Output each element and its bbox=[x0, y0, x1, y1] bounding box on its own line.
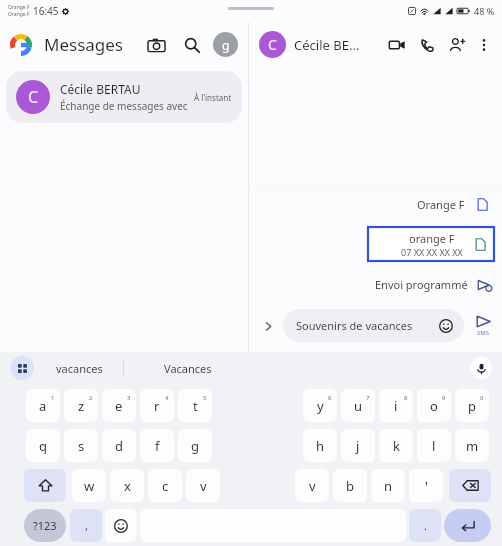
staticText: h bbox=[316, 437, 325, 455]
button[interactable]: y bbox=[303, 389, 337, 422]
button[interactable]: j bbox=[341, 429, 375, 462]
staticText: 4 bbox=[165, 394, 169, 402]
staticText: i bbox=[394, 397, 398, 415]
button[interactable]: e bbox=[102, 389, 136, 422]
button[interactable]: o bbox=[417, 389, 451, 422]
staticText: ?123 bbox=[33, 518, 57, 533]
staticText: z bbox=[78, 397, 85, 415]
staticText: Souvenirs de vacances bbox=[296, 318, 413, 333]
button[interactable]: C bbox=[6, 71, 242, 123]
staticText: Messages bbox=[44, 33, 124, 56]
button[interactable]: Envoi programmé bbox=[249, 274, 502, 295]
staticText: s bbox=[78, 437, 85, 455]
staticText: u bbox=[354, 397, 363, 415]
staticText: g bbox=[191, 437, 199, 455]
button[interactable]: p bbox=[455, 389, 489, 422]
button[interactable]: C bbox=[259, 31, 286, 58]
staticText: 9 bbox=[442, 394, 446, 402]
button[interactable]: s bbox=[64, 429, 98, 462]
staticText: 7 bbox=[366, 394, 370, 402]
button[interactable]: x bbox=[110, 469, 144, 502]
button[interactable]: Backspace bbox=[449, 469, 491, 502]
staticText: k bbox=[393, 437, 400, 455]
button[interactable]: d bbox=[102, 429, 136, 462]
staticText: e bbox=[115, 397, 123, 415]
button[interactable]: k bbox=[379, 429, 413, 462]
button[interactable]: Orange F bbox=[249, 193, 502, 216]
button[interactable]: Vacances bbox=[164, 361, 212, 376]
staticText: y bbox=[317, 397, 324, 415]
button[interactable]: Emoji bbox=[436, 316, 456, 336]
button[interactable]: q bbox=[26, 429, 60, 462]
button[interactable]: Video call bbox=[384, 32, 410, 58]
button[interactable]: m bbox=[455, 429, 489, 462]
staticText: x bbox=[124, 477, 131, 495]
button[interactable]: z bbox=[64, 389, 98, 422]
staticText: ' bbox=[425, 477, 428, 495]
staticText: 48 % bbox=[474, 5, 495, 17]
staticText: orange F bbox=[409, 231, 455, 246]
button[interactable]: b bbox=[333, 469, 367, 502]
staticText: 16:45 bbox=[33, 4, 59, 18]
staticText: 07 XX XX XX XX bbox=[401, 246, 463, 258]
staticText: 6 bbox=[328, 394, 332, 402]
button[interactable]: v bbox=[186, 469, 220, 502]
button[interactable]: Voice input bbox=[470, 357, 492, 379]
staticText: , bbox=[85, 518, 88, 533]
button[interactable]: u bbox=[341, 389, 375, 422]
button[interactable]: l bbox=[417, 429, 451, 462]
staticText: m bbox=[466, 437, 479, 455]
button[interactable]: f bbox=[140, 429, 174, 462]
button[interactable]: a bbox=[26, 389, 60, 422]
button[interactable]: Souvenirs de vacances bbox=[283, 309, 464, 342]
button[interactable]: i bbox=[379, 389, 413, 422]
staticText: Échange de messages avec … bbox=[60, 99, 194, 113]
staticText: d bbox=[115, 437, 123, 455]
staticText: q bbox=[39, 437, 47, 455]
button[interactable]: Call bbox=[414, 32, 440, 58]
button[interactable]: Send SMS bbox=[470, 314, 496, 337]
button[interactable]: Enter bbox=[444, 509, 491, 542]
button[interactable]: Camera bbox=[141, 30, 171, 60]
staticText: j bbox=[356, 437, 360, 455]
button[interactable]: v bbox=[295, 469, 329, 502]
button[interactable]: More options bbox=[472, 33, 496, 57]
staticText: . bbox=[424, 518, 427, 533]
staticText: Cécile BERTAU bbox=[60, 81, 141, 97]
button[interactable]: vacances bbox=[56, 361, 103, 376]
staticText: f bbox=[155, 437, 160, 455]
staticText: 2 bbox=[89, 394, 93, 402]
staticText: 8 bbox=[404, 394, 408, 402]
staticText: v bbox=[309, 477, 316, 495]
staticText: g bbox=[222, 37, 230, 53]
staticText: Envoi programmé bbox=[375, 277, 468, 292]
staticText: c bbox=[162, 477, 169, 495]
staticText: v bbox=[200, 477, 207, 495]
button[interactable]: c bbox=[148, 469, 182, 502]
button[interactable]: Toolbar bbox=[10, 356, 34, 380]
button[interactable]: orange F bbox=[367, 226, 495, 262]
button[interactable]: . bbox=[409, 509, 441, 542]
staticText: p bbox=[468, 397, 476, 415]
staticText: b bbox=[346, 477, 354, 495]
button[interactable]: r bbox=[140, 389, 174, 422]
button[interactable]: g bbox=[178, 429, 212, 462]
button[interactable]: Account bbox=[213, 32, 238, 57]
button[interactable]: ' bbox=[409, 469, 443, 502]
button[interactable]: Emoji bbox=[105, 509, 137, 542]
button[interactable]: Expand bbox=[257, 315, 279, 337]
button[interactable]: , bbox=[70, 509, 102, 542]
button[interactable]: n bbox=[371, 469, 405, 502]
staticText: t bbox=[193, 397, 198, 415]
staticText: a bbox=[39, 397, 47, 415]
button[interactable]: Add people bbox=[444, 32, 470, 58]
staticText: Cécile BE… bbox=[294, 36, 360, 54]
button[interactable]: ?123 bbox=[24, 509, 66, 542]
staticText: 5 bbox=[203, 394, 207, 402]
button[interactable]: t bbox=[178, 389, 212, 422]
button[interactable]: Shift bbox=[24, 469, 66, 502]
button[interactable]: Search bbox=[177, 30, 207, 60]
button[interactable]: h bbox=[303, 429, 337, 462]
button[interactable]: w bbox=[72, 469, 106, 502]
